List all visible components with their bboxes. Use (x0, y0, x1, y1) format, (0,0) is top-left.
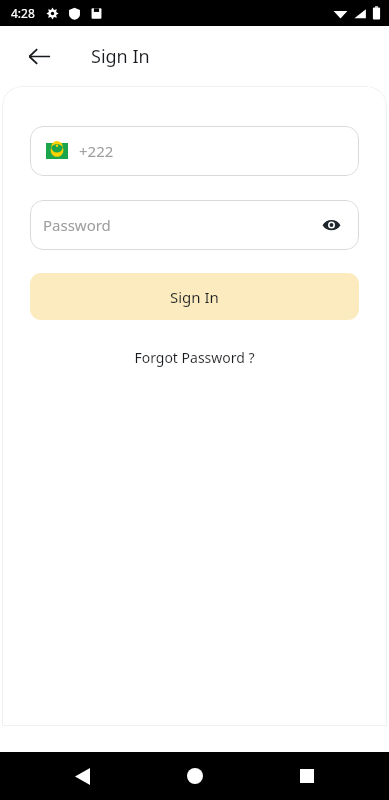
staticText: 4:28 (11, 5, 35, 21)
button[interactable]: Password (30, 200, 359, 250)
staticText: +222 (79, 141, 114, 161)
button[interactable]: Home (173, 754, 217, 798)
button[interactable]: Sign In (30, 273, 359, 320)
staticText: Password (43, 215, 111, 235)
staticText: Sign In (170, 287, 219, 307)
button[interactable]: Show password (317, 211, 345, 239)
button[interactable]: Back (18, 35, 60, 77)
button[interactable]: Forgot Password ? (2, 344, 387, 371)
staticText: Sign In (91, 44, 150, 69)
button[interactable]: Back (60, 754, 104, 798)
button[interactable]: Recent apps (285, 754, 329, 798)
button[interactable]: +222 (30, 126, 359, 176)
